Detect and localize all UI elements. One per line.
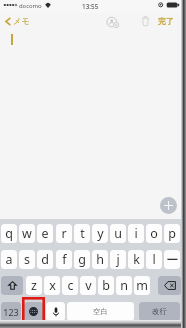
staticText: q	[5, 225, 13, 242]
button[interactable]: ー	[164, 250, 180, 269]
button[interactable]: h	[92, 250, 108, 269]
button[interactable]: 123	[1, 302, 21, 321]
staticText: 123	[3, 306, 19, 318]
button[interactable]: b	[98, 276, 114, 295]
button[interactable]: Switch keyboard	[24, 302, 43, 321]
staticText: f	[62, 251, 67, 268]
staticText: i	[134, 225, 138, 242]
staticText: s	[24, 251, 30, 268]
staticText: g	[78, 251, 86, 268]
button[interactable]: y	[92, 224, 108, 243]
button[interactable]: j	[110, 250, 126, 269]
staticText: k	[133, 251, 140, 268]
button[interactable]: Backspace	[158, 276, 181, 295]
button[interactable]: u	[110, 224, 126, 243]
staticText: e	[41, 225, 49, 242]
staticText: v	[85, 277, 92, 294]
staticText: y	[97, 225, 104, 242]
button[interactable]: x	[44, 276, 60, 295]
button[interactable]: 改行	[139, 302, 180, 321]
button[interactable]: a	[1, 250, 17, 269]
button[interactable]: 完了	[155, 14, 177, 28]
button[interactable]: s	[19, 250, 35, 269]
staticText: 改行	[152, 307, 167, 316]
button[interactable]: v	[80, 276, 96, 295]
button[interactable]: d	[37, 250, 53, 269]
staticText: u	[114, 225, 122, 242]
staticText: メモ	[13, 16, 30, 26]
button[interactable]: n	[116, 276, 132, 295]
button[interactable]: l	[146, 250, 162, 269]
staticText: c	[67, 277, 74, 294]
button[interactable]: r	[56, 224, 72, 243]
button[interactable]: Delete	[138, 14, 152, 28]
button[interactable]: c	[62, 276, 78, 295]
staticText: 完了	[158, 16, 174, 26]
staticText: x	[49, 277, 56, 294]
staticText: a	[5, 251, 13, 268]
button[interactable]: i	[128, 224, 144, 243]
staticText: 空白	[93, 307, 108, 316]
staticText: docomo	[19, 2, 42, 10]
button[interactable]: Shift	[1, 276, 23, 295]
staticText: ー	[166, 252, 179, 268]
button[interactable]: Add	[160, 197, 177, 214]
staticText: m	[136, 277, 148, 294]
button[interactable]: o	[146, 224, 162, 243]
button[interactable]: Add people	[105, 14, 121, 30]
button[interactable]: q	[1, 224, 17, 243]
button[interactable]: w	[19, 224, 35, 243]
staticText: n	[120, 277, 128, 294]
button[interactable]: メモ	[3, 14, 35, 28]
button[interactable]: 空白	[67, 302, 134, 321]
staticText: h	[96, 251, 104, 268]
staticText: d	[41, 251, 49, 268]
button[interactable]: k	[128, 250, 144, 269]
staticText: o	[150, 225, 158, 242]
staticText: r	[61, 225, 67, 242]
button[interactable]: p	[164, 224, 180, 243]
button[interactable]: t	[74, 224, 90, 243]
button[interactable]: m	[134, 276, 150, 295]
staticText: z	[31, 277, 37, 294]
staticText: l	[152, 251, 156, 268]
button[interactable]: z	[26, 276, 42, 295]
staticText: t	[80, 225, 85, 242]
button[interactable]: e	[37, 224, 53, 243]
staticText: j	[116, 251, 120, 268]
button[interactable]: Dictation	[46, 302, 65, 321]
staticText: p	[168, 225, 176, 242]
button[interactable]: g	[74, 250, 90, 269]
button[interactable]: f	[56, 250, 72, 269]
staticText: b	[102, 277, 110, 294]
staticText: w	[22, 225, 32, 242]
staticText: 13:55	[82, 2, 99, 11]
